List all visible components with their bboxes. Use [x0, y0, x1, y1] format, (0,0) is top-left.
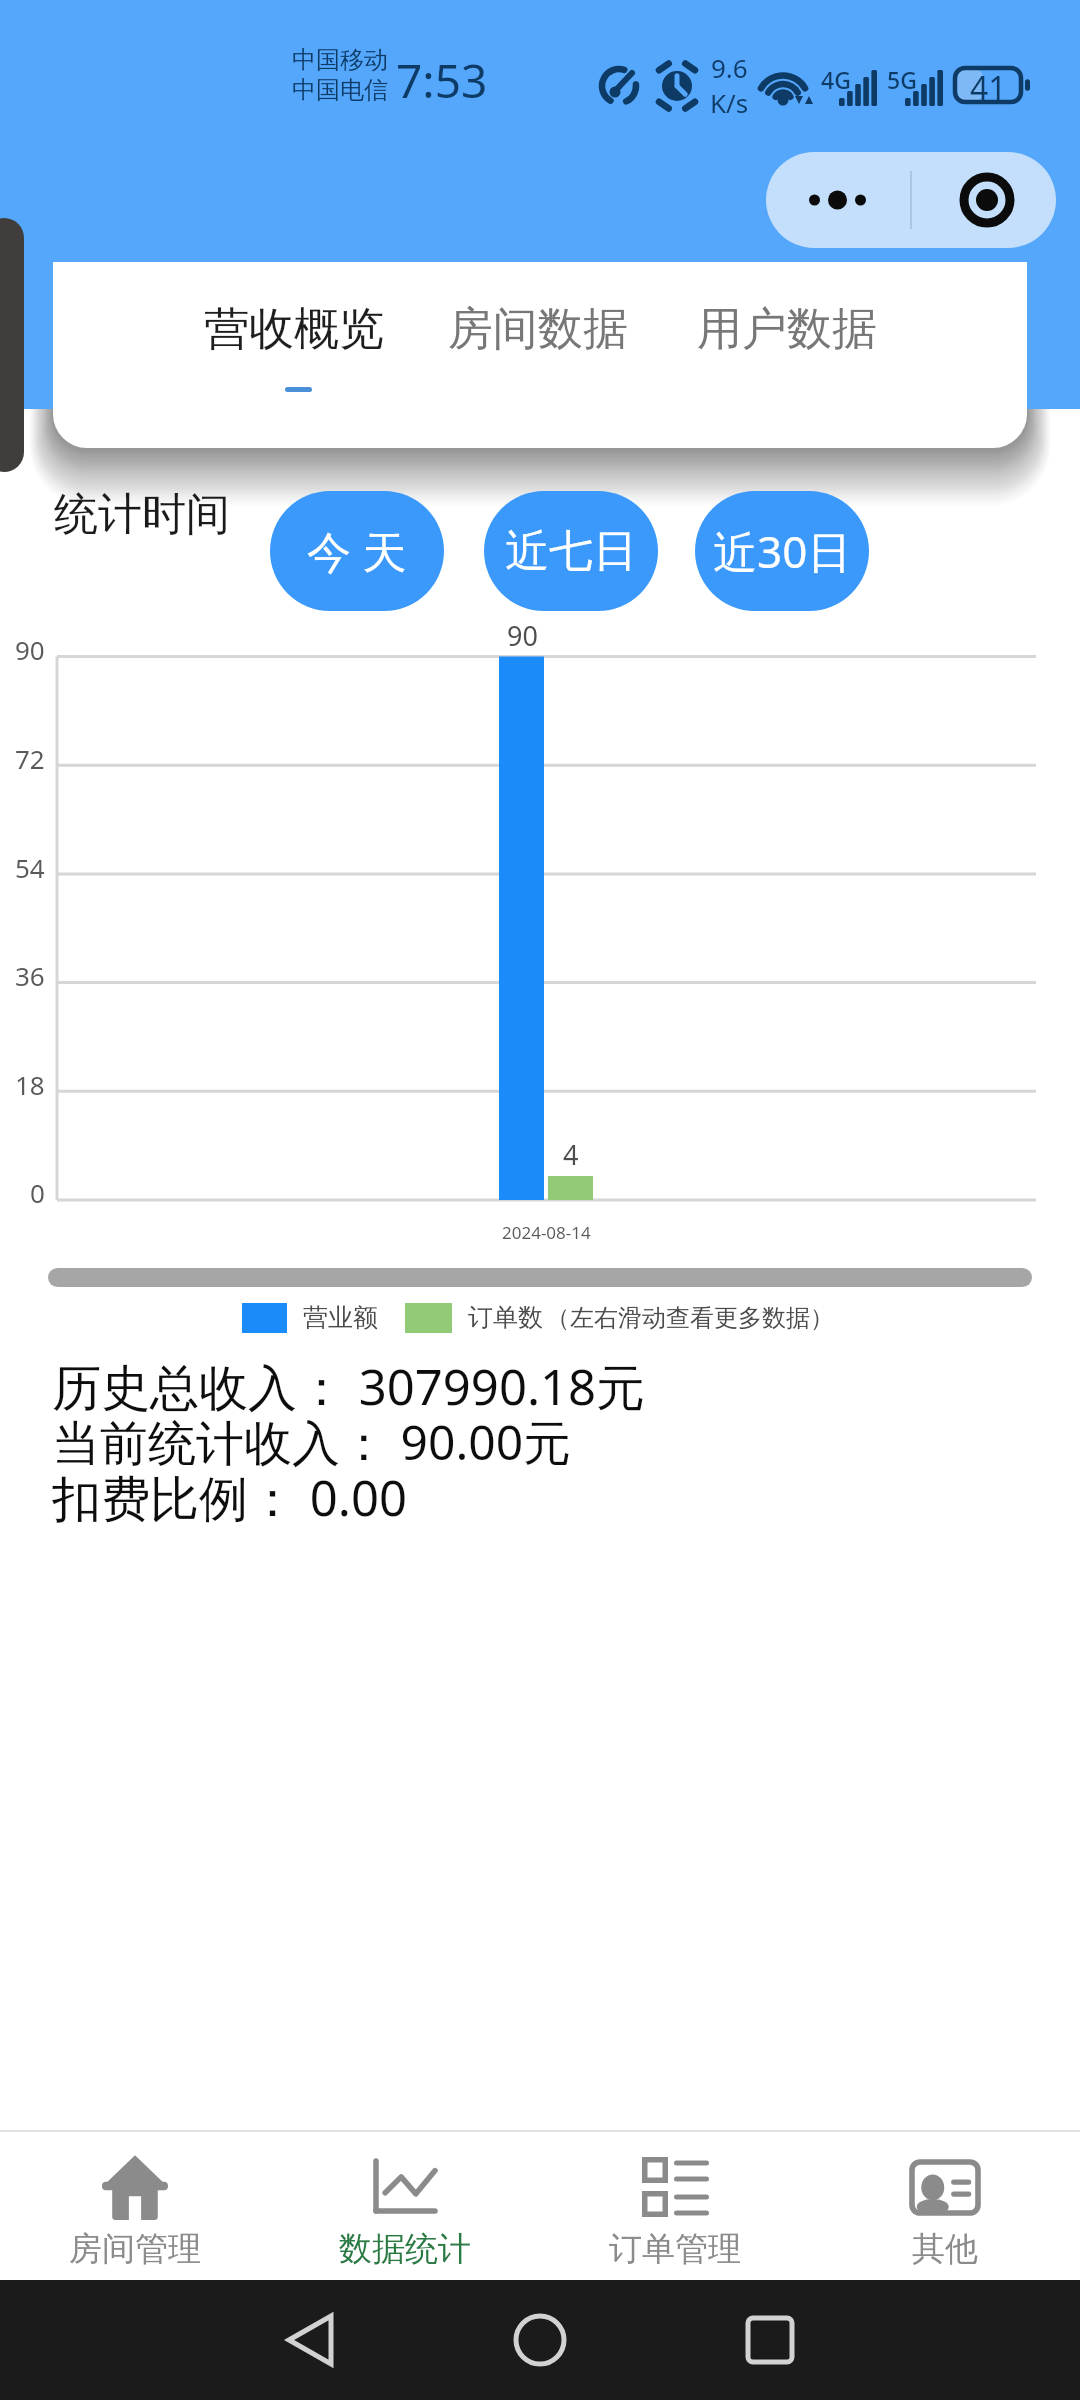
staticText: 5G — [887, 64, 917, 95]
staticText: 营业额 — [303, 1302, 378, 1333]
button[interactable]: 其他 — [810, 2142, 1080, 2280]
staticText: 4 — [563, 1136, 579, 1170]
staticText: 中国电信 — [292, 75, 388, 105]
staticText: K/s — [710, 85, 749, 120]
staticText: 统计时间 — [54, 487, 230, 542]
staticText: 36 — [15, 958, 45, 993]
staticText: 2024-08-14 — [502, 1221, 591, 1244]
button[interactable]: 近七日 — [484, 491, 658, 611]
staticText: 其他 — [912, 2228, 978, 2270]
staticText: 历史总收入： 307990.18元 — [52, 1353, 646, 1420]
staticText: 72 — [15, 741, 45, 776]
button[interactable]: 数据统计 — [270, 2142, 540, 2280]
button[interactable]: 房间数据 — [434, 296, 638, 416]
staticText: 90 — [15, 632, 45, 667]
staticText: 中国移动 — [292, 45, 388, 75]
staticText: 4G — [821, 64, 851, 95]
staticText: 房间管理 — [69, 2228, 201, 2270]
button[interactable]: 用户数据 — [683, 296, 887, 416]
button[interactable]: Close mini program — [912, 152, 1056, 248]
staticText: 今 天 — [307, 521, 407, 581]
button[interactable]: Back — [195, 2280, 425, 2400]
staticText: 7:53 — [396, 49, 488, 112]
staticText: 营收概览 — [204, 301, 384, 358]
button[interactable]: 今 天 — [270, 491, 444, 611]
staticText: 0 — [30, 1175, 45, 1210]
staticText: 近七日 — [505, 524, 637, 579]
staticText: 90 — [507, 617, 538, 651]
staticText: 41 — [970, 66, 1007, 104]
staticText: 数据统计 — [339, 2228, 471, 2270]
staticText: 订单管理 — [609, 2228, 741, 2270]
staticText: 订单数 — [468, 1302, 543, 1333]
staticText: 54 — [15, 850, 45, 885]
button[interactable]: 房间管理 — [0, 2142, 270, 2280]
staticText: 用户数据 — [697, 301, 877, 358]
button[interactable]: Home — [425, 2280, 655, 2400]
button[interactable]: 订单管理 — [540, 2142, 810, 2280]
staticText: 近30日 — [713, 521, 852, 581]
staticText: 18 — [15, 1067, 45, 1102]
staticText: 当前统计收入： 90.00元 — [52, 1409, 572, 1475]
button[interactable]: More options — [766, 152, 911, 248]
staticText: 扣费比例： 0.00 — [52, 1464, 407, 1531]
staticText: 房间数据 — [448, 301, 628, 358]
button[interactable]: 营收概览 — [190, 296, 394, 416]
staticText: （左右滑动查看更多数据） — [546, 1303, 834, 1333]
staticText: 9.6 — [711, 50, 748, 85]
button[interactable]: 近30日 — [695, 491, 869, 611]
button[interactable]: Recent apps — [655, 2280, 885, 2400]
